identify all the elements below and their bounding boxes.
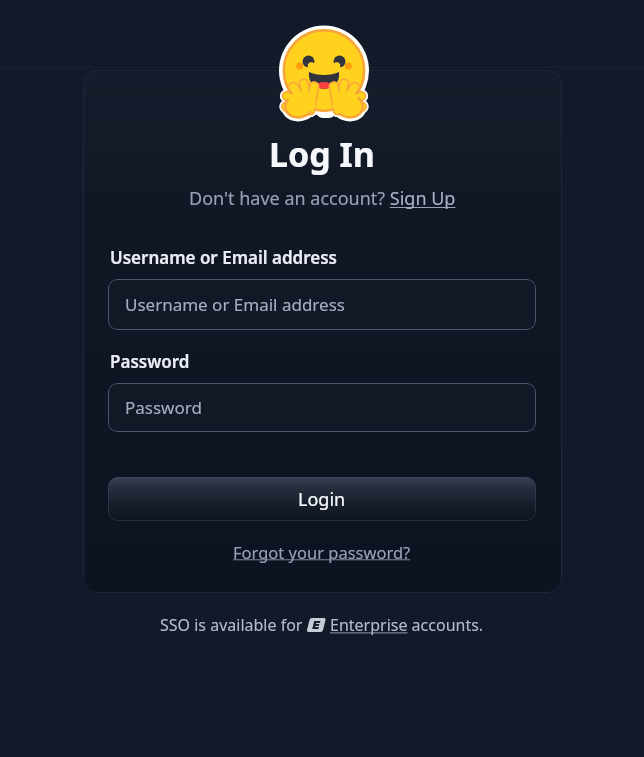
staticText: Enterprise accounts. <box>330 614 484 636</box>
button[interactable]: SSO is available for <box>160 614 484 636</box>
button[interactable]: Forgot your password? <box>233 541 411 563</box>
staticText: SSO is available for <box>160 614 307 636</box>
button[interactable]: Password <box>108 383 536 432</box>
staticText: Log In <box>269 131 375 177</box>
button[interactable]: Username or Email address <box>108 279 536 330</box>
staticText: Username or Email address <box>110 246 337 269</box>
button[interactable]: Login <box>108 477 536 521</box>
button[interactable]: Don't have an account? Sign Up <box>189 186 456 211</box>
staticText: Password <box>110 350 190 373</box>
staticText: Login <box>298 487 346 512</box>
staticText: Username or Email address <box>125 293 345 316</box>
staticText: Password <box>125 396 202 419</box>
